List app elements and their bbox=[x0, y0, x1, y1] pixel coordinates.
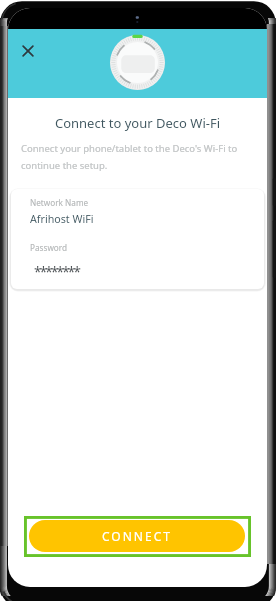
staticText: Connect your phone/tablet to the Deco's … bbox=[21, 142, 250, 171]
button[interactable]: Close bbox=[18, 41, 38, 61]
staticText: CONNECT bbox=[102, 528, 172, 544]
staticText: Password bbox=[30, 242, 68, 253]
button[interactable]: CONNECT bbox=[29, 520, 245, 552]
staticText: Connect to your Deco Wi-Fi bbox=[8, 114, 267, 132]
staticText: Afrihost WiFi bbox=[30, 212, 94, 227]
staticText: Network Name bbox=[30, 197, 89, 208]
staticText: ******** bbox=[34, 263, 80, 281]
